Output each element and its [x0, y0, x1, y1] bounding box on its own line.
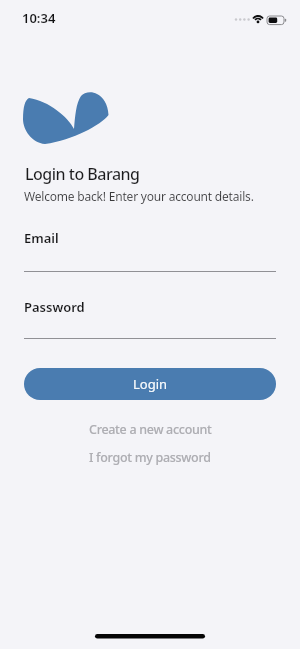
staticText: Login to Barang — [25, 163, 140, 185]
staticText: Create a new account — [89, 421, 212, 438]
button[interactable]: I forgot my password — [89, 449, 211, 466]
staticText: Password — [24, 298, 85, 316]
staticText: 10:34 — [22, 9, 56, 27]
staticText: Welcome back! Enter your account details… — [24, 188, 254, 204]
staticText: Email — [24, 229, 59, 247]
button[interactable]: Create a new account — [89, 421, 212, 438]
button[interactable]: Login — [24, 368, 276, 400]
staticText: I forgot my password — [89, 449, 211, 466]
staticText: Login — [133, 375, 168, 393]
